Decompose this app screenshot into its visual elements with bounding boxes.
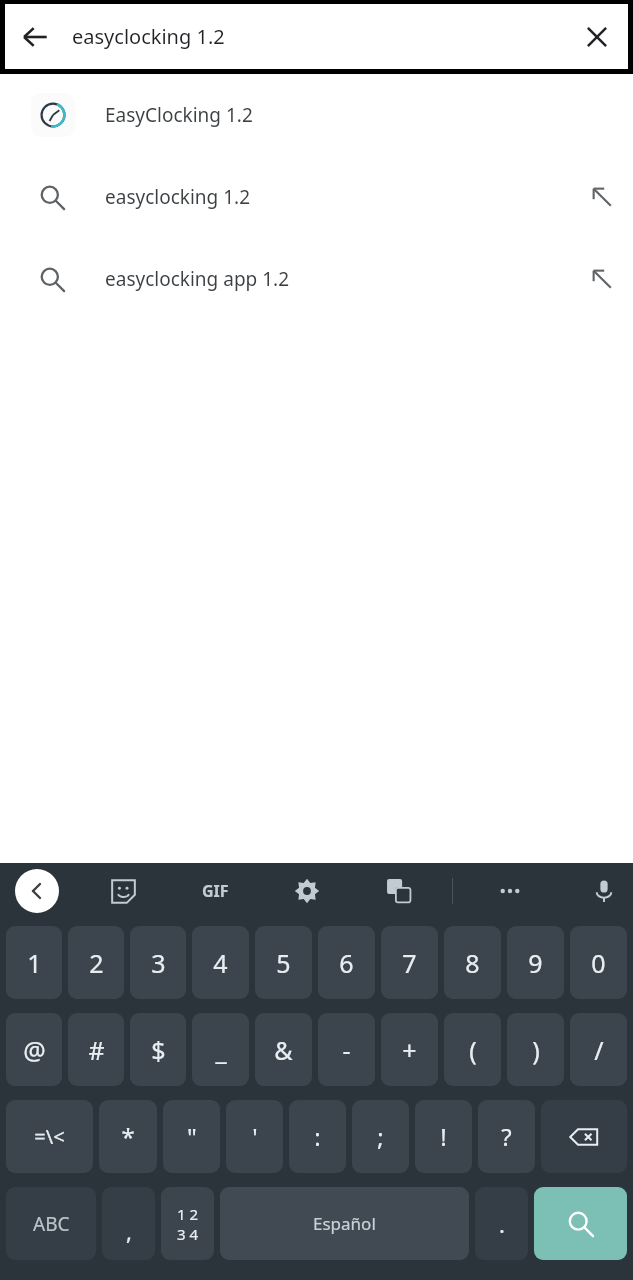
staticText: 5 [276,946,291,980]
button[interactable]: Clear [566,6,628,68]
staticText: 8 [465,946,480,980]
button[interactable]: 6 [318,926,375,999]
button[interactable]: ? [478,1100,535,1173]
staticText: 1 2 [177,1204,199,1224]
staticText: easyclocking 1.2 [105,184,251,210]
button[interactable]: ! [415,1100,472,1173]
button[interactable]: " [163,1100,220,1173]
button[interactable]: _ [192,1013,249,1086]
button[interactable]: Español [220,1187,469,1260]
button[interactable]: @ [6,1013,62,1086]
button[interactable]: ; [352,1100,409,1173]
button[interactable]: Close toolbar [15,869,59,913]
staticText: ? [501,1120,512,1153]
button[interactable]: Translate [380,863,418,919]
button[interactable]: - [318,1013,375,1086]
button[interactable]: ( [444,1013,501,1086]
button[interactable]: Backspace [541,1100,627,1173]
staticText: , [126,1216,132,1246]
staticText: 0 [591,946,606,980]
button[interactable]: ABC [6,1187,96,1260]
button[interactable]: =\< [6,1100,93,1173]
button[interactable]: * [99,1100,157,1173]
staticText: 6 [339,946,354,980]
button[interactable]: ) [507,1013,564,1086]
staticText: . [499,1209,505,1239]
button[interactable]: 9 [507,926,564,999]
staticText: easyclocking app 1.2 [105,266,290,292]
staticText: ( [469,1033,477,1067]
button[interactable]: easyclocking app 1.2 [0,238,633,320]
staticText: 4 [213,946,228,980]
button[interactable]: / [570,1013,627,1086]
button[interactable]: 1 [6,926,62,999]
staticText: easyclocking 1.2 [72,23,566,50]
staticText: / [594,1033,604,1067]
button[interactable]: 2 [68,926,124,999]
staticText: & [274,1033,293,1067]
button[interactable]: 3 [130,926,186,999]
button[interactable]: + [381,1013,438,1086]
staticText: =\< [34,1123,65,1150]
staticText: : [314,1120,321,1153]
button[interactable]: Settings [288,863,326,919]
button[interactable]: 0 [570,926,627,999]
staticText: * [121,1120,135,1153]
staticText: ; [377,1120,384,1153]
staticText: 3 4 [177,1224,199,1244]
staticText: ' [252,1120,258,1153]
button[interactable]: 7 [381,926,438,999]
button[interactable]: Insert suggestion [571,238,633,320]
button[interactable]: 5 [255,926,312,999]
button[interactable]: Insert suggestion [571,156,633,238]
staticText: # [88,1033,105,1067]
button[interactable]: GIF [196,863,234,919]
staticText: 3 [151,946,166,980]
button[interactable]: Search [534,1187,627,1260]
staticText: ) [532,1033,540,1067]
button[interactable]: easyclocking 1.2 [0,156,633,238]
staticText: EasyClocking 1.2 [105,102,253,128]
button[interactable]: 8 [444,926,501,999]
button[interactable]: # [68,1013,124,1086]
staticText: _ [215,1033,227,1067]
staticText: $ [151,1033,166,1067]
staticText: 1 [27,946,42,980]
button[interactable]: & [255,1013,312,1086]
staticText: ! [440,1120,447,1153]
button[interactable]: Stickers [104,863,142,919]
staticText: GIF [202,880,229,902]
staticText: ABC [33,1211,70,1237]
button[interactable]: Numbers [161,1187,214,1260]
button[interactable]: ' [226,1100,283,1173]
button[interactable]: More options [491,863,529,919]
staticText: 9 [528,946,543,980]
staticText: 2 [89,946,104,980]
button[interactable]: , [102,1187,155,1260]
button[interactable]: Voice input [585,863,623,919]
button[interactable]: Back [5,7,65,67]
button[interactable]: $ [130,1013,186,1086]
staticText: - [342,1033,351,1067]
staticText: + [402,1033,417,1067]
button[interactable]: 4 [192,926,249,999]
button[interactable]: . [475,1187,528,1260]
staticText: Español [313,1212,376,1235]
button[interactable]: : [289,1100,346,1173]
button[interactable]: EasyClocking 1.2 [0,74,633,156]
staticText: " [187,1120,197,1153]
staticText: @ [23,1033,46,1067]
staticText: 7 [402,946,417,980]
